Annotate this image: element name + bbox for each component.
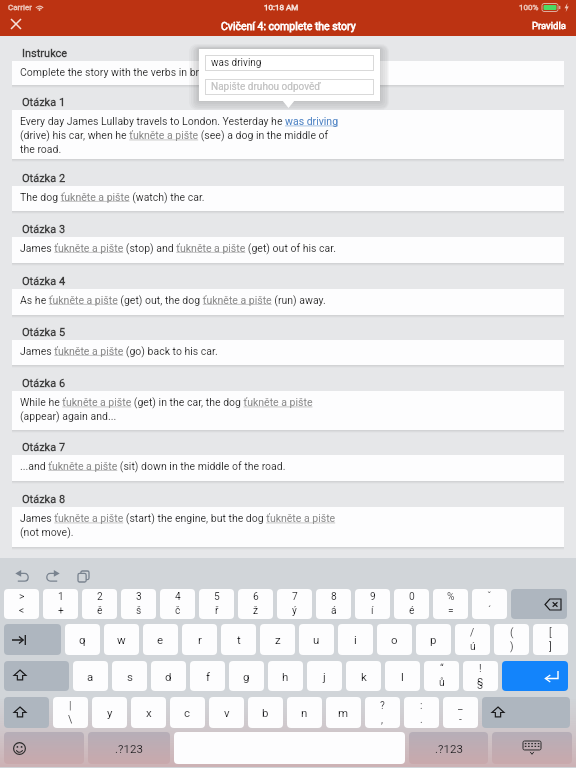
button[interactable]: w [104,624,139,655]
button[interactable]: e [143,624,178,655]
button[interactable]: Otázka 1 [22,96,66,109]
button[interactable]: r [182,624,217,655]
staticText: ž [253,605,259,617]
button[interactable]: .?123 [409,732,488,764]
button[interactable]: Otázka 8 [22,493,66,506]
button[interactable]: James ťukněte a pište (start) the engine… [12,507,564,547]
staticText: o [391,633,398,646]
button[interactable]: 5 [199,589,234,619]
button[interactable]: ( [494,624,529,655]
button[interactable]: s [112,661,147,691]
staticText: While he ťukněte a pište (get) in the ca… [20,396,342,422]
button[interactable]: h [268,661,303,691]
button[interactable]: Emoji [4,732,84,764]
button[interactable]: Napište druhou odpověď [205,79,374,95]
button[interactable]: While he ťukněte a pište (get) in the ca… [12,391,564,430]
button[interactable]: q [65,624,100,655]
button[interactable]: 6 [238,589,273,619]
button[interactable]: Complete the story with the verbs in bra… [12,61,564,85]
button[interactable]: James ťukněte a pište (stop) and ťukněte… [12,237,564,263]
button[interactable]: Otázka 6 [22,377,66,390]
staticText: \ [68,714,73,726]
staticText: v [224,706,230,719]
button[interactable]: t [221,624,256,655]
staticText: 2 [97,591,103,603]
button[interactable]: v [209,697,244,728]
button[interactable]: o [377,624,412,655]
button[interactable]: u [299,624,334,655]
button[interactable]: The dog ťukněte a pište (watch) the car. [12,186,564,211]
button[interactable]: Backspace [511,589,567,619]
button[interactable]: j [307,661,342,691]
button[interactable]: g [229,661,264,691]
button[interactable]: Close [2,13,30,34]
button[interactable]: was driving [205,55,374,71]
button[interactable]: Undo [10,564,34,588]
button[interactable]: ! [463,661,498,691]
button[interactable]: Pravidla [522,17,576,34]
button[interactable]: : [404,697,439,728]
button[interactable]: n [287,697,322,728]
button[interactable]: > [4,589,39,619]
staticText: Every day James Lullaby travels to Londo… [20,115,342,155]
button[interactable]: b [248,697,283,728]
button[interactable]: d [151,661,186,691]
button[interactable]: m [326,697,361,728]
button[interactable]: Return [502,661,568,691]
button[interactable]: z [260,624,295,655]
button[interactable]: 2 [82,589,117,619]
button[interactable]: x [131,697,166,728]
button[interactable]: a [73,661,108,691]
button[interactable]: ˇ [472,589,507,619]
button[interactable]: k [346,661,381,691]
button[interactable]: / [455,624,490,655]
button[interactable]: Otázka 2 [22,172,66,185]
staticText: ý [292,605,297,617]
button[interactable]: Otázka 7 [22,441,66,454]
button[interactable]: Instrukce [22,47,68,60]
button[interactable]: c [170,697,205,728]
button[interactable]: 8 [316,589,351,619]
button[interactable]: Otázka 5 [22,326,66,339]
button[interactable]: 0 [394,589,429,619]
button[interactable]: | [53,697,88,728]
button[interactable]: “ [424,661,459,691]
staticText: 9 [370,591,376,603]
button[interactable]: 4 [160,589,195,619]
button[interactable]: Hide keyboard [492,732,572,764]
button[interactable]: 1 [43,589,78,619]
button[interactable]: ...and ťukněte a pište (sit) down in the… [12,455,564,481]
button[interactable]: .?123 [88,732,170,764]
button[interactable]: Redo [40,564,64,588]
button[interactable]: _ [443,697,478,728]
button[interactable]: f [190,661,225,691]
button[interactable]: ? [365,697,400,728]
button[interactable]: y [92,697,127,728]
button[interactable]: 7 [277,589,312,619]
button[interactable]: Shift [482,697,570,728]
button[interactable]: 3 [121,589,156,619]
staticText: y [107,706,113,719]
button[interactable]: l [385,661,420,691]
button[interactable]: Otázka 4 [22,275,66,288]
button[interactable]: Paste [71,564,95,588]
staticText: ? [380,700,385,712]
button[interactable]: [ [533,624,568,655]
button[interactable]: Otázka 3 [22,223,66,236]
button[interactable]: p [416,624,451,655]
button[interactable]: Tab [4,624,61,655]
button[interactable]: James ťukněte a pište (go) back to his c… [12,340,564,365]
button[interactable]: i [338,624,373,655]
staticText: Otázka 3 [22,223,66,236]
button[interactable]: As he ťukněte a pište (get) out, the dog… [12,289,564,315]
staticText: t [237,633,241,646]
staticText: The dog ťukněte a pište (watch) the car. [20,191,205,203]
button[interactable]: Shift [4,661,69,691]
button[interactable]: Every day James Lullaby travels to Londo… [12,110,564,159]
staticText: q [79,633,86,646]
button[interactable]: % [433,589,468,619]
button[interactable]: 9 [355,589,390,619]
staticText: l [401,670,404,683]
button[interactable]: Shift [4,697,49,728]
